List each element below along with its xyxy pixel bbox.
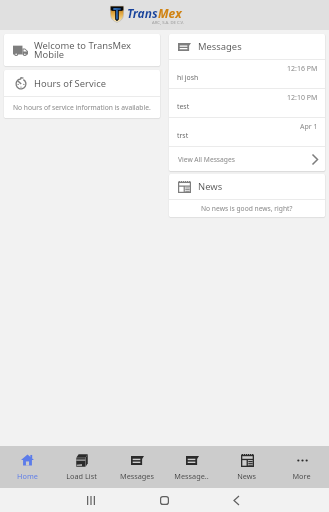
button[interactable]: View All Messages [169, 147, 325, 171]
staticText: hi josh [177, 73, 199, 82]
staticText: Message.. [174, 471, 209, 481]
staticText: More [292, 471, 311, 481]
staticText: Load List [66, 471, 97, 481]
button[interactable]: Load List [54, 446, 109, 488]
staticText: Trans [127, 5, 158, 21]
button[interactable]: Recent apps [68, 488, 114, 512]
staticText: 12:10 PM [287, 93, 318, 103]
staticText: Messages [120, 471, 154, 481]
staticText: Hours of Service [34, 77, 106, 90]
staticText: Welcome to TransMex Mobile [34, 39, 152, 61]
staticText: News [198, 180, 223, 193]
button[interactable]: More [274, 446, 329, 488]
button[interactable]: Hours of Service [4, 70, 160, 96]
staticText: trst [177, 131, 189, 140]
button[interactable]: Welcome to TransMex Mobile [4, 34, 160, 66]
staticText: Mex [158, 5, 182, 21]
button[interactable]: 12:16 PM [169, 60, 325, 88]
staticText: 12:16 PM [287, 64, 318, 74]
button[interactable]: Message.. [164, 446, 219, 488]
button[interactable]: 12:10 PM [169, 89, 325, 117]
staticText: ARC, S.A. DE C.V. [152, 20, 184, 26]
staticText: test [177, 102, 190, 111]
staticText: No hours of service information is avail… [13, 103, 151, 112]
button[interactable]: News [219, 446, 274, 488]
button[interactable]: Messages [169, 34, 325, 59]
staticText: View All Messages [178, 155, 235, 164]
staticText: Messages [198, 40, 242, 53]
staticText: Home [17, 471, 38, 481]
button[interactable]: Apr 1 [169, 118, 325, 146]
button[interactable]: Messages [109, 446, 164, 488]
button[interactable]: Back [213, 488, 259, 512]
staticText: No news is good news, right? [201, 204, 293, 213]
button[interactable]: Home [0, 446, 54, 488]
button[interactable]: Home [141, 488, 187, 512]
staticText: Apr 1 [300, 122, 318, 132]
staticText: News [237, 471, 256, 481]
button[interactable]: News [169, 174, 325, 199]
